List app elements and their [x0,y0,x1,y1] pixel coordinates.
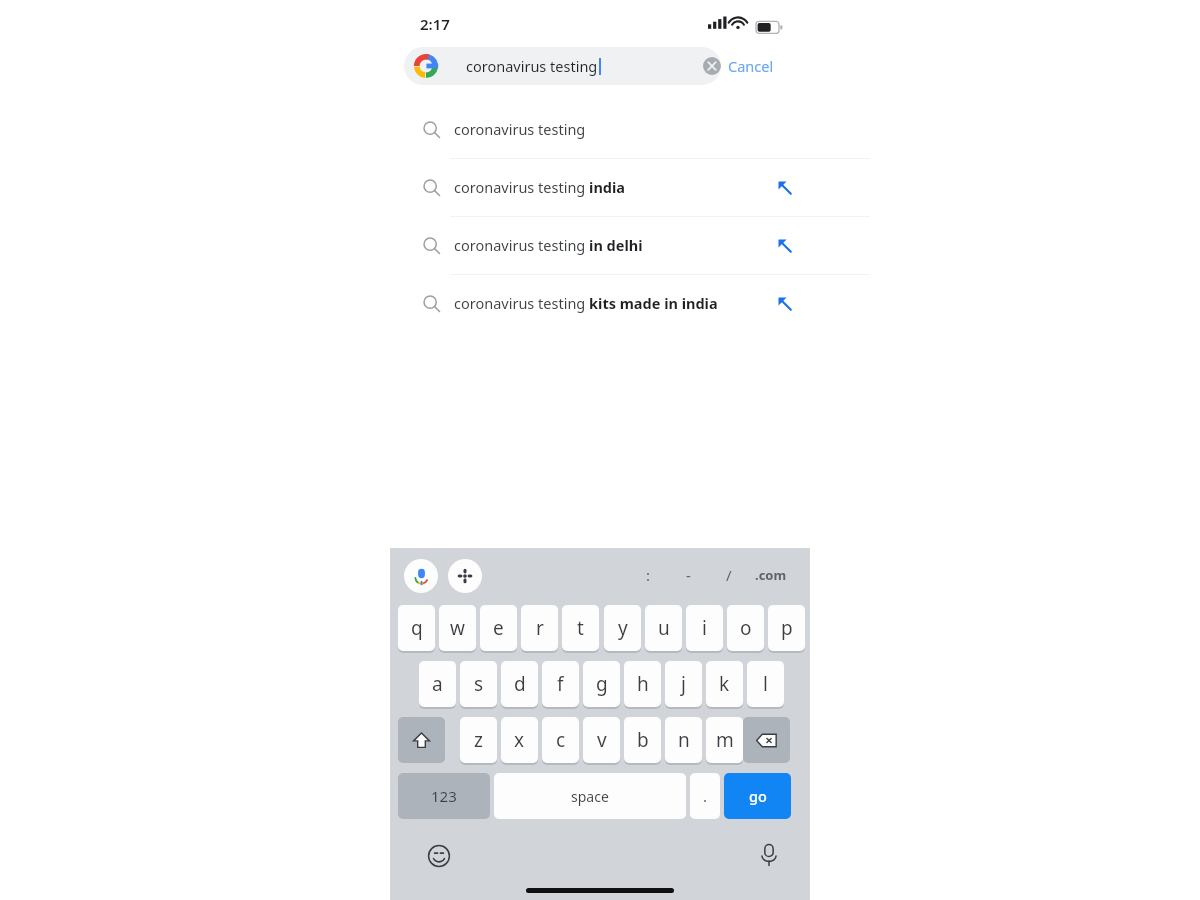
button[interactable]: - [671,558,705,592]
button[interactable]: y [604,605,641,651]
button[interactable]: Shift [398,717,445,763]
button[interactable]: coronavirus testing [404,47,721,85]
button[interactable]: g [583,661,620,707]
button[interactable]: coronavirus testing kits made in india [390,274,810,332]
staticText: m [716,727,734,753]
staticText: i [702,615,707,641]
button[interactable]: Google Lens [448,559,482,593]
button[interactable]: Clear query [703,57,721,75]
button[interactable]: Voice input [404,559,438,593]
staticText: p [781,615,793,641]
staticText: e [493,615,504,641]
staticText: / [726,565,732,585]
button[interactable]: w [439,605,476,651]
staticText: coronavirus testing kits made in india [454,293,718,313]
button[interactable]: Refine search [769,172,799,202]
staticText: - [686,565,691,585]
button[interactable]: Backspace [743,717,790,763]
staticText: Cancel [728,56,774,76]
button[interactable]: go [724,773,791,819]
staticText: .com [755,566,787,584]
button[interactable]: k [706,661,743,707]
staticText: coronavirus testing [466,56,598,76]
button[interactable]: r [521,605,558,651]
button[interactable]: 123 [398,773,490,819]
button[interactable]: c [542,717,579,763]
staticText: coronavirus testing india [454,177,625,197]
button[interactable]: m [706,717,743,763]
button[interactable]: o [727,605,764,651]
button[interactable]: i [686,605,723,651]
button[interactable]: : [631,558,665,592]
button[interactable]: b [624,717,661,763]
staticText: t [577,615,584,641]
staticText: v [597,727,607,753]
button[interactable]: Refine search [769,230,799,260]
button[interactable]: Cancel [728,47,774,85]
button[interactable]: j [665,661,702,707]
staticText: go [749,786,767,806]
staticText: coronavirus testing [454,119,586,139]
staticText: . [703,786,708,806]
button[interactable]: d [501,661,538,707]
staticText: n [678,727,690,753]
button[interactable]: t [562,605,599,651]
staticText: g [596,671,608,697]
button[interactable]: coronavirus testing [390,100,810,158]
staticText: s [474,671,484,697]
button[interactable]: Dictation [756,842,782,868]
button[interactable]: l [747,661,784,707]
staticText: a [432,671,443,697]
button[interactable]: x [501,717,538,763]
button[interactable]: n [665,717,702,763]
staticText: x [514,727,525,753]
button[interactable]: z [460,717,497,763]
button[interactable]: v [583,717,620,763]
button[interactable]: f [542,661,579,707]
staticText: b [637,727,649,753]
button[interactable]: h [624,661,661,707]
button[interactable]: .com [754,558,788,592]
staticText: j [681,671,686,697]
staticText: 2:17 [420,14,450,34]
staticText: coronavirus testing in delhi [454,235,643,255]
staticText: space [571,787,609,806]
staticText: h [637,671,649,697]
staticText: r [536,615,544,641]
button[interactable]: q [398,605,435,651]
staticText: 123 [431,786,457,806]
staticText: d [514,671,526,697]
staticText: w [450,615,465,641]
button[interactable]: p [768,605,805,651]
staticText: y [618,615,628,641]
button[interactable]: Emoji [426,843,452,869]
button[interactable]: e [480,605,517,651]
staticText: l [763,671,768,697]
staticText: q [411,615,423,641]
button[interactable]: space [494,773,686,819]
staticText: c [556,727,566,753]
button[interactable]: a [419,661,456,707]
staticText: o [740,615,752,641]
button[interactable]: Refine search [769,288,799,318]
button[interactable]: u [645,605,682,651]
button[interactable]: / [712,558,746,592]
staticText: : [646,565,651,585]
button[interactable]: coronavirus testing in delhi [390,216,810,274]
staticText: k [719,671,730,697]
staticText: z [474,727,483,753]
staticText: u [658,615,670,641]
button[interactable]: coronavirus testing india [390,158,810,216]
button[interactable]: s [460,661,497,707]
staticText: f [557,671,564,697]
button[interactable]: . [690,773,720,819]
